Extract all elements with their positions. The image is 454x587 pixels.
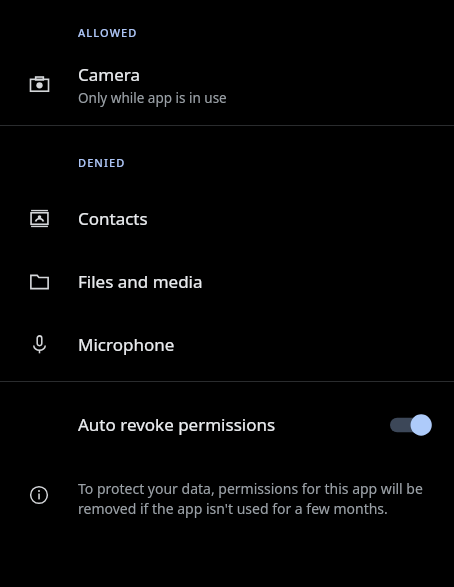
other: Contacts permission — [28, 207, 51, 230]
button[interactable]: Files and media permission — [0, 250, 454, 313]
button[interactable]: Contacts permission — [0, 187, 454, 250]
staticText: ALLOWED — [78, 25, 138, 40]
staticText: Files and media — [78, 270, 203, 293]
staticText: Contacts — [78, 207, 148, 230]
staticText: Camera — [78, 63, 140, 86]
staticText: To protect your data, permissions for th… — [78, 479, 436, 518]
button[interactable]: Camera permission — [0, 53, 454, 116]
button[interactable]: Auto revoke permissions — [0, 382, 454, 467]
staticText: Auto revoke permissions — [78, 413, 390, 436]
button[interactable]: Microphone permission — [0, 313, 454, 376]
staticText: Only while app is in use — [78, 89, 227, 107]
other: Camera permission — [28, 73, 51, 96]
other: Microphone permission — [28, 333, 51, 356]
other: Files and media permission — [28, 270, 51, 293]
staticText: Microphone — [78, 333, 175, 356]
staticText: DENIED — [78, 155, 126, 170]
other: Information — [28, 484, 50, 506]
